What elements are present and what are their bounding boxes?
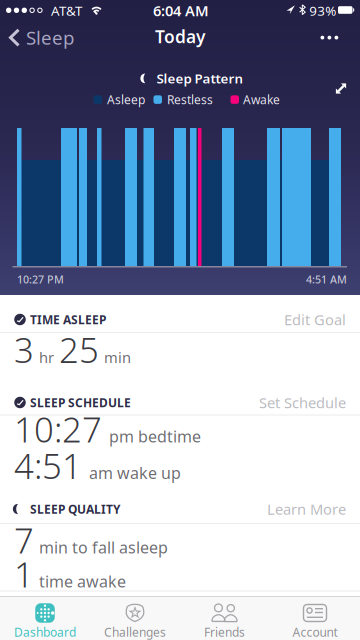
button[interactable]: Learn More — [267, 496, 346, 522]
staticText: min — [104, 347, 131, 367]
button[interactable]: Friends — [181, 596, 267, 640]
staticText: 7 — [14, 517, 34, 563]
button[interactable] — [328, 75, 354, 101]
staticText: Account — [292, 624, 337, 640]
staticText: Learn More — [267, 499, 346, 519]
staticText: SLEEP SCHEDULE — [30, 394, 131, 410]
staticText: Asleep — [107, 92, 145, 107]
staticText: Friends — [204, 624, 245, 640]
staticText: hr — [39, 347, 54, 367]
staticText: 3 — [14, 326, 34, 372]
button[interactable]: Account — [272, 596, 358, 640]
staticText: 1 — [14, 551, 34, 597]
staticText: Sleep Pattern — [156, 69, 243, 87]
staticText: 10:27 — [14, 406, 102, 452]
staticText: 4:51 — [14, 442, 82, 488]
staticText: 93% — [309, 2, 336, 19]
staticText: TIME ASLEEP — [30, 311, 106, 327]
staticText: Edit Goal — [284, 310, 346, 329]
staticText: 10:27 PM — [17, 272, 64, 286]
button[interactable]: Set Schedule — [259, 389, 346, 415]
staticText: 6:04 AM — [153, 1, 209, 20]
button[interactable]: Challenges — [92, 596, 178, 640]
staticText: am wake up — [89, 462, 181, 483]
staticText: Awake — [243, 92, 280, 107]
staticText: AT&T — [51, 2, 82, 19]
staticText: Dashboard — [14, 624, 76, 640]
staticText: Challenges — [104, 624, 166, 640]
staticText: pm bedtime — [109, 426, 201, 447]
button[interactable]: Sleep — [9, 21, 79, 55]
staticText: Restless — [167, 92, 213, 107]
staticText: 25 — [59, 326, 99, 372]
button[interactable] — [312, 25, 346, 51]
staticText: min to fall asleep — [39, 537, 168, 558]
button[interactable]: Dashboard — [2, 596, 88, 640]
staticText: 4:51 AM — [306, 272, 347, 286]
staticText: SLEEP QUALITY — [30, 501, 121, 517]
staticText: Set Schedule — [259, 393, 346, 412]
staticText: Today — [155, 25, 205, 48]
button[interactable]: Edit Goal — [284, 306, 346, 332]
staticText: Sleep — [26, 25, 74, 50]
staticText: time awake — [39, 571, 126, 592]
